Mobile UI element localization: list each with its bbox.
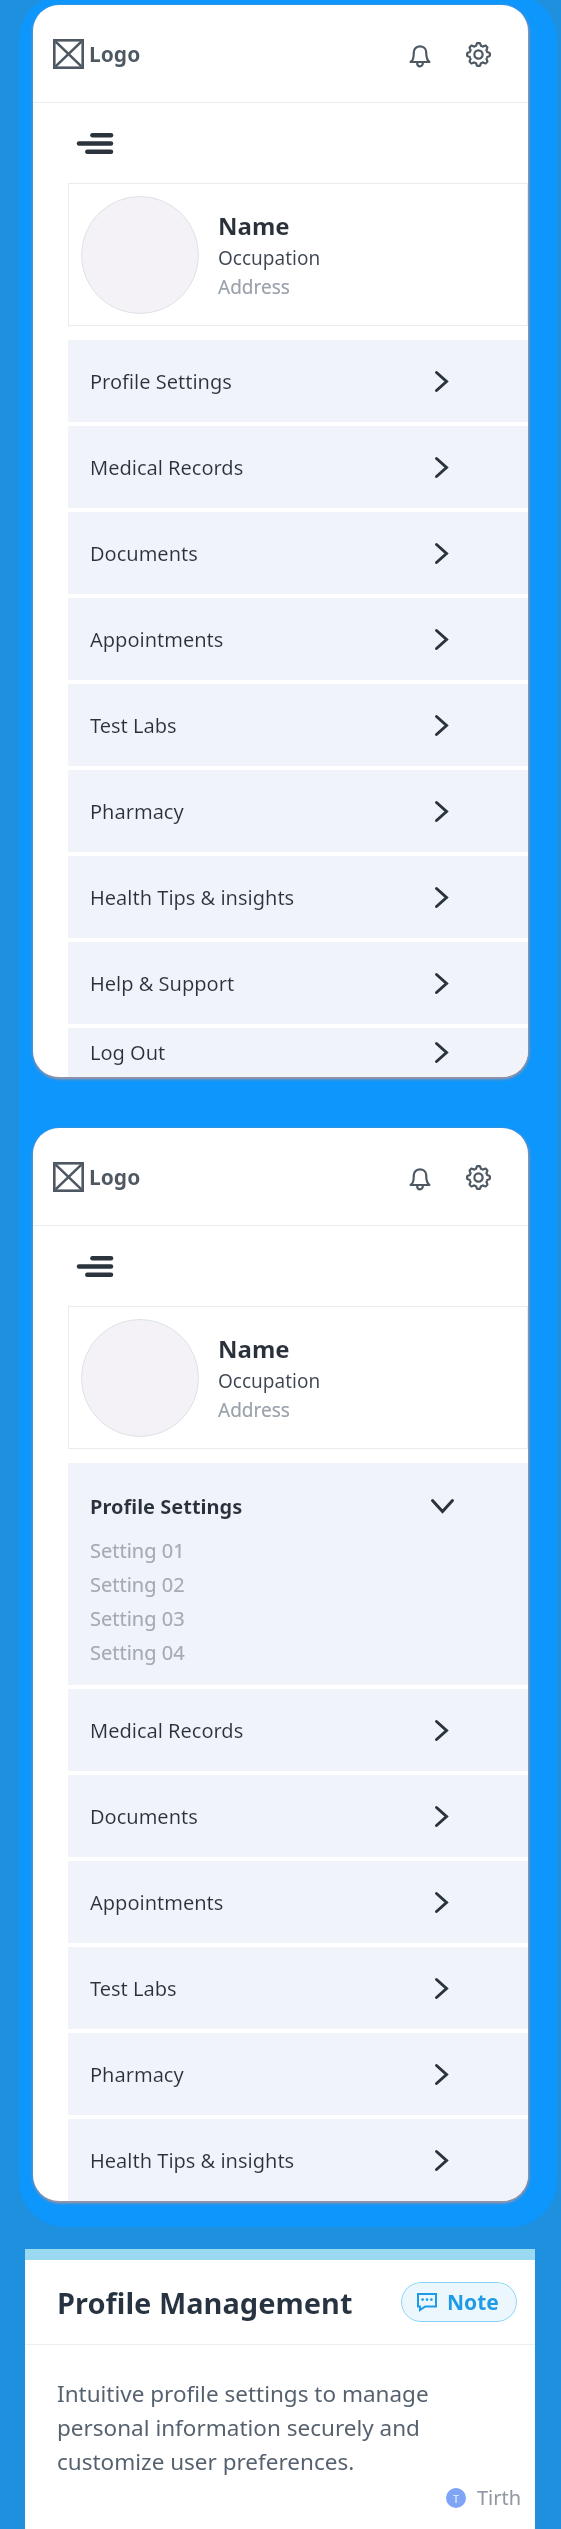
button[interactable]: Notifications [398, 1155, 442, 1199]
button[interactable]: Logo [33, 39, 151, 69]
staticText: Documents [90, 540, 198, 567]
button[interactable]: Medical Records [68, 1689, 528, 1771]
staticText: Documents [90, 1803, 198, 1830]
staticText: Setting 04 [90, 1639, 185, 1666]
button[interactable]: Menu [69, 1240, 121, 1292]
staticText: Log Out [90, 1039, 166, 1066]
staticText: Health Tips & insights [90, 2147, 295, 2174]
staticText: Name [218, 1332, 290, 1365]
staticText: Tirth [477, 2484, 522, 2511]
staticText: Test Labs [90, 712, 177, 739]
staticText: Address [218, 274, 290, 300]
button[interactable]: Settings [456, 32, 500, 76]
staticText: Pharmacy [90, 2061, 184, 2088]
button[interactable]: Documents [68, 512, 528, 594]
staticText: Medical Records [90, 1717, 244, 1744]
staticText: Health Tips & insights [90, 884, 295, 911]
button[interactable]: Profile Settings [68, 1463, 528, 1685]
staticText: Appointments [90, 626, 224, 653]
staticText: Profile Settings [90, 368, 232, 395]
button[interactable]: Logo [33, 1162, 151, 1192]
staticText: Occupation [218, 1368, 321, 1394]
button[interactable]: Help & Support [68, 942, 528, 1024]
staticText: Name [218, 209, 290, 242]
staticText: Note [447, 2288, 499, 2317]
button[interactable]: Settings [456, 1155, 500, 1199]
button[interactable]: Medical Records [68, 426, 528, 508]
staticText: Test Labs [90, 1975, 177, 2002]
button[interactable]: Profile Settings [68, 340, 528, 422]
staticText: Pharmacy [90, 798, 184, 825]
button[interactable]: Test Labs [68, 684, 528, 766]
staticText: Setting 03 [90, 1605, 185, 1632]
staticText: Occupation [218, 245, 321, 271]
staticText: Profile Settings [90, 1493, 243, 1520]
staticText: Logo [89, 40, 141, 69]
button[interactable]: Menu [69, 117, 121, 169]
button[interactable]: Appointments [68, 1861, 528, 1943]
staticText: Appointments [90, 1889, 224, 1916]
button[interactable]: Pharmacy [68, 770, 528, 852]
staticText: Intuitive profile settings to manage per… [57, 2378, 429, 2476]
staticText: Address [218, 1397, 290, 1423]
button[interactable]: Test Labs [68, 1947, 528, 2029]
button[interactable]: Health Tips & insights [68, 2119, 528, 2201]
button[interactable]: Appointments [68, 598, 528, 680]
staticText: Setting 02 [90, 1571, 185, 1598]
staticText: Medical Records [90, 454, 244, 481]
staticText: T [453, 2491, 460, 2506]
button[interactable]: Pharmacy [68, 2033, 528, 2115]
button[interactable]: Documents [68, 1775, 528, 1857]
staticText: Profile Management [57, 2283, 353, 2322]
button[interactable]: Note [401, 2282, 517, 2322]
button[interactable]: Health Tips & insights [68, 856, 528, 938]
staticText: Logo [89, 1163, 141, 1192]
staticText: Help & Support [90, 970, 235, 997]
button[interactable]: Log Out [68, 1028, 528, 1077]
button[interactable]: Notifications [398, 32, 442, 76]
staticText: Setting 01 [90, 1537, 185, 1564]
